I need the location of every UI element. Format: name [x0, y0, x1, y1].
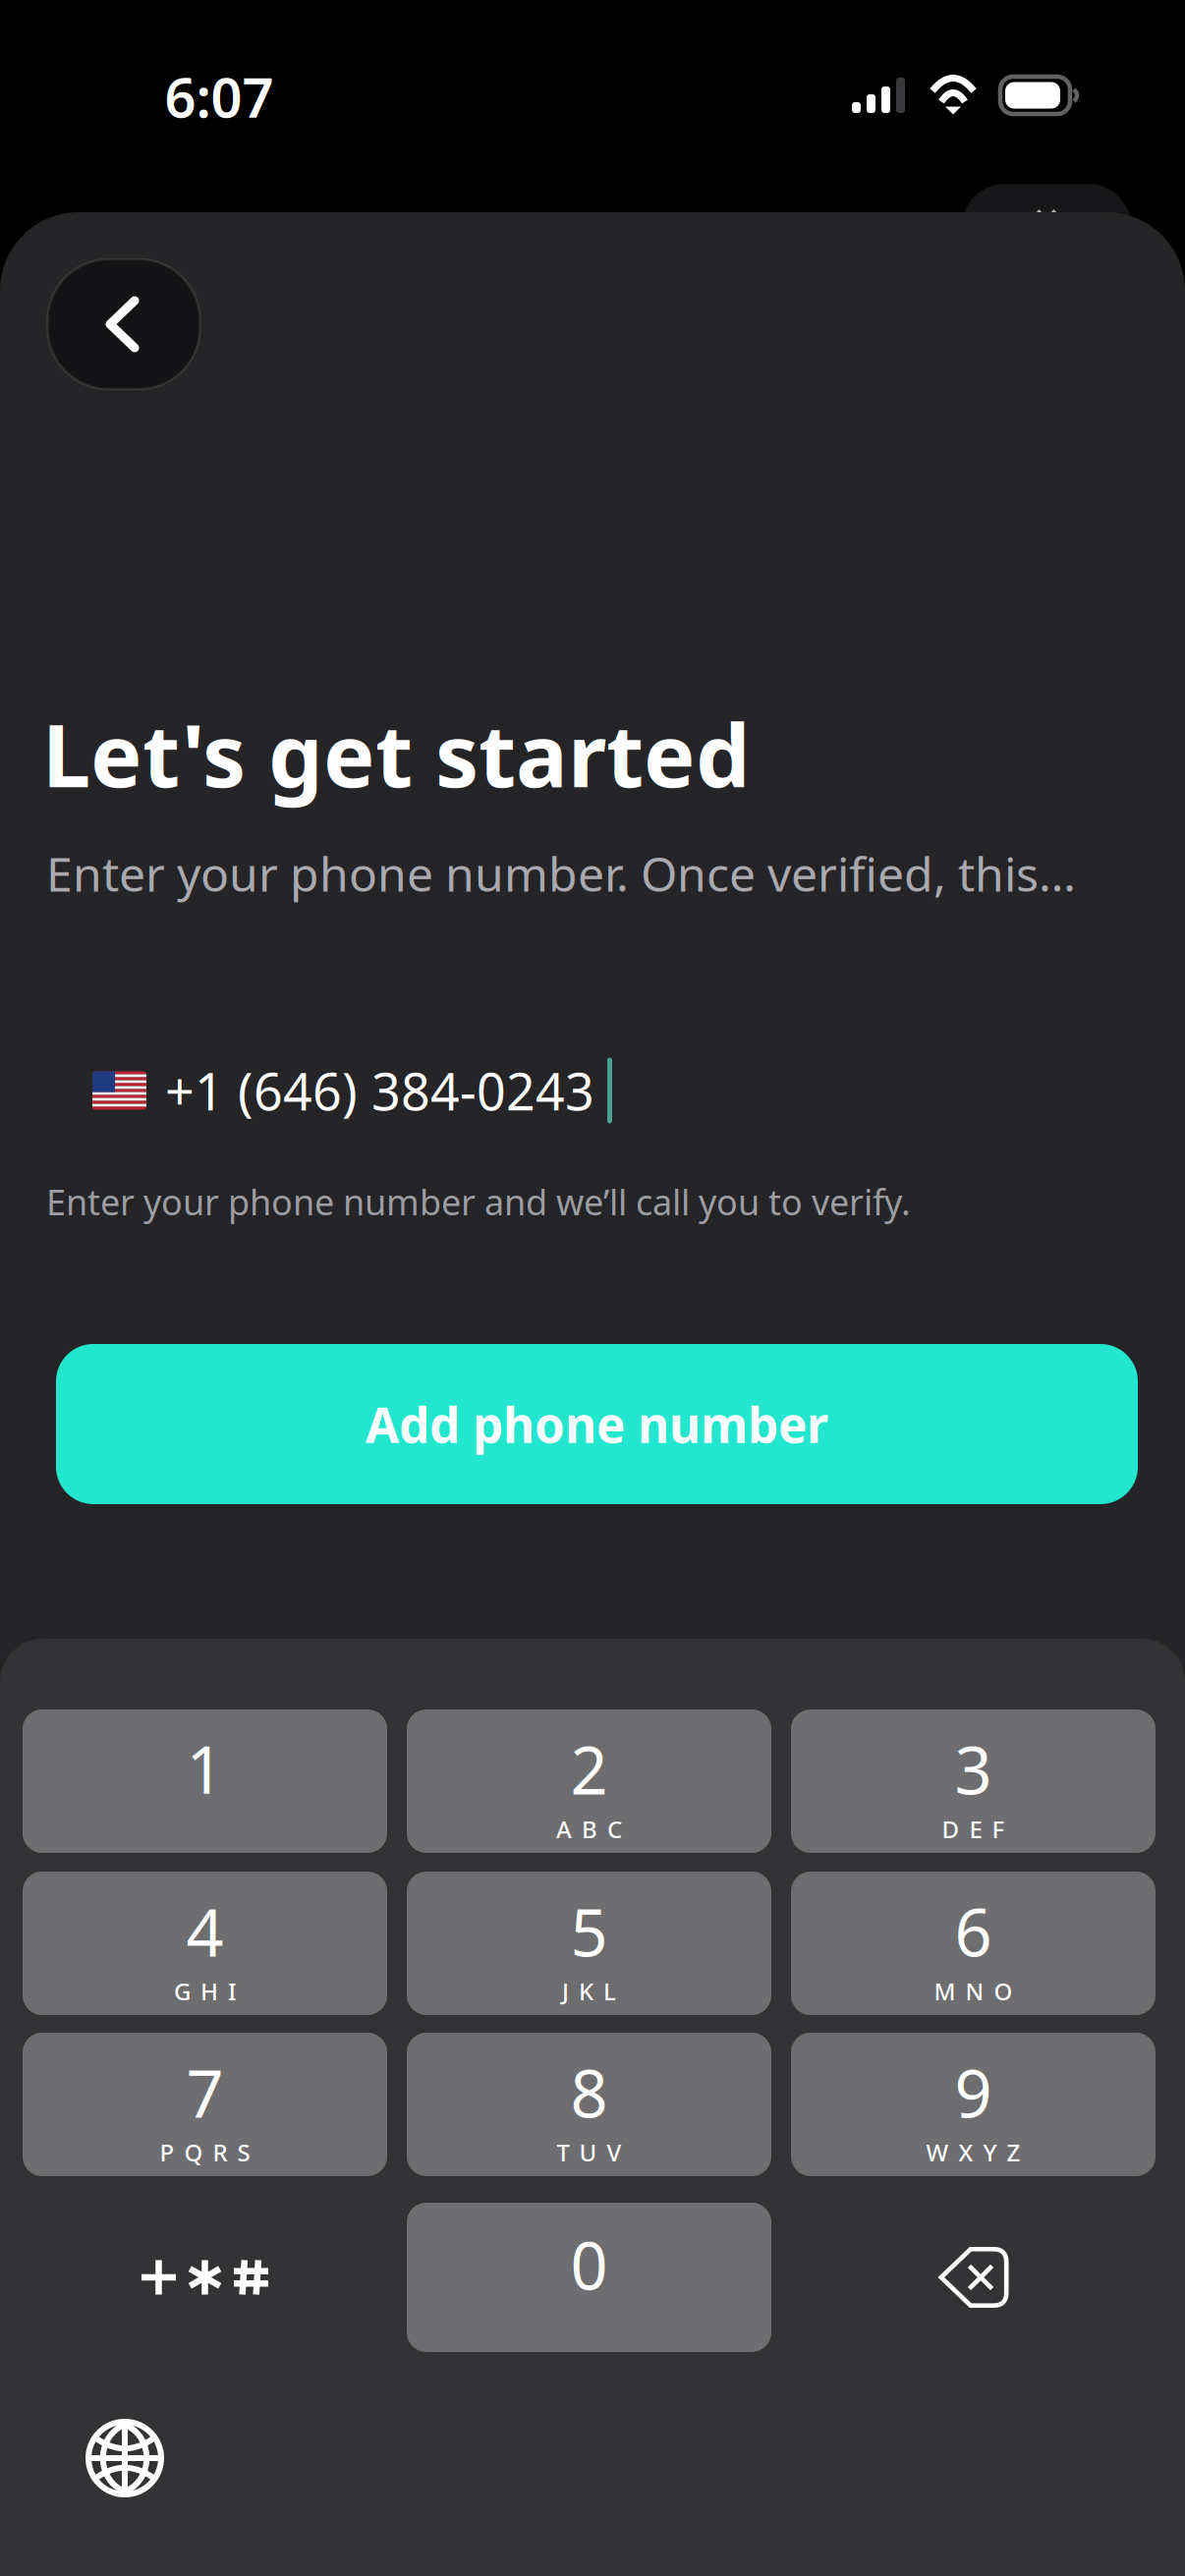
button[interactable]: 3	[791, 1709, 1156, 1853]
staticText: Enter your phone number. Once verified, …	[46, 842, 1076, 905]
button[interactable]: Add phone number	[56, 1344, 1138, 1504]
staticText: 5	[570, 1888, 608, 1975]
button[interactable]: 0	[407, 2203, 771, 2352]
staticText: 3	[955, 1725, 992, 1812]
staticText: ABC	[556, 1813, 622, 1845]
button[interactable]: 8	[407, 2033, 771, 2176]
staticText: 9	[955, 2049, 992, 2136]
staticText: GHI	[174, 1976, 236, 2007]
staticText: 6	[955, 1888, 992, 1975]
button[interactable]: Delete	[791, 2206, 1156, 2349]
button[interactable]: 2	[407, 1709, 771, 1853]
staticText: MNO	[934, 1976, 1013, 2007]
staticText: JKL	[562, 1976, 616, 2007]
staticText: PQRS	[160, 2137, 250, 2168]
staticText: 1	[186, 1725, 224, 1812]
button[interactable]: Change keyboard	[66, 2399, 184, 2517]
staticText: WXYZ	[926, 2137, 1020, 2168]
staticText: 4	[186, 1888, 224, 1975]
button[interactable]: 1	[23, 1709, 387, 1853]
button[interactable]: 7	[23, 2033, 387, 2176]
staticText: Add phone number	[366, 1392, 828, 1456]
button[interactable]: Plus, star, pound	[23, 2206, 387, 2349]
staticText: 0	[570, 2221, 608, 2308]
staticText: 6:07	[165, 60, 274, 133]
staticText: Let's get started	[42, 696, 751, 811]
button[interactable]: Back	[48, 259, 200, 389]
button[interactable]: 6	[791, 1872, 1156, 2015]
staticText: DEF	[942, 1813, 1005, 1845]
staticText: 7	[186, 2049, 224, 2136]
button[interactable]: 9	[791, 2033, 1156, 2176]
staticText: Enter your phone number and we’ll call y…	[46, 1178, 911, 1225]
button[interactable]: 4	[23, 1872, 387, 2015]
button[interactable]: 5	[407, 1872, 771, 2015]
staticText: 2	[570, 1725, 608, 1812]
staticText: +1 (646) 384-0243	[165, 1057, 594, 1125]
staticText: 8	[570, 2049, 608, 2136]
staticText: TUV	[557, 2137, 621, 2168]
